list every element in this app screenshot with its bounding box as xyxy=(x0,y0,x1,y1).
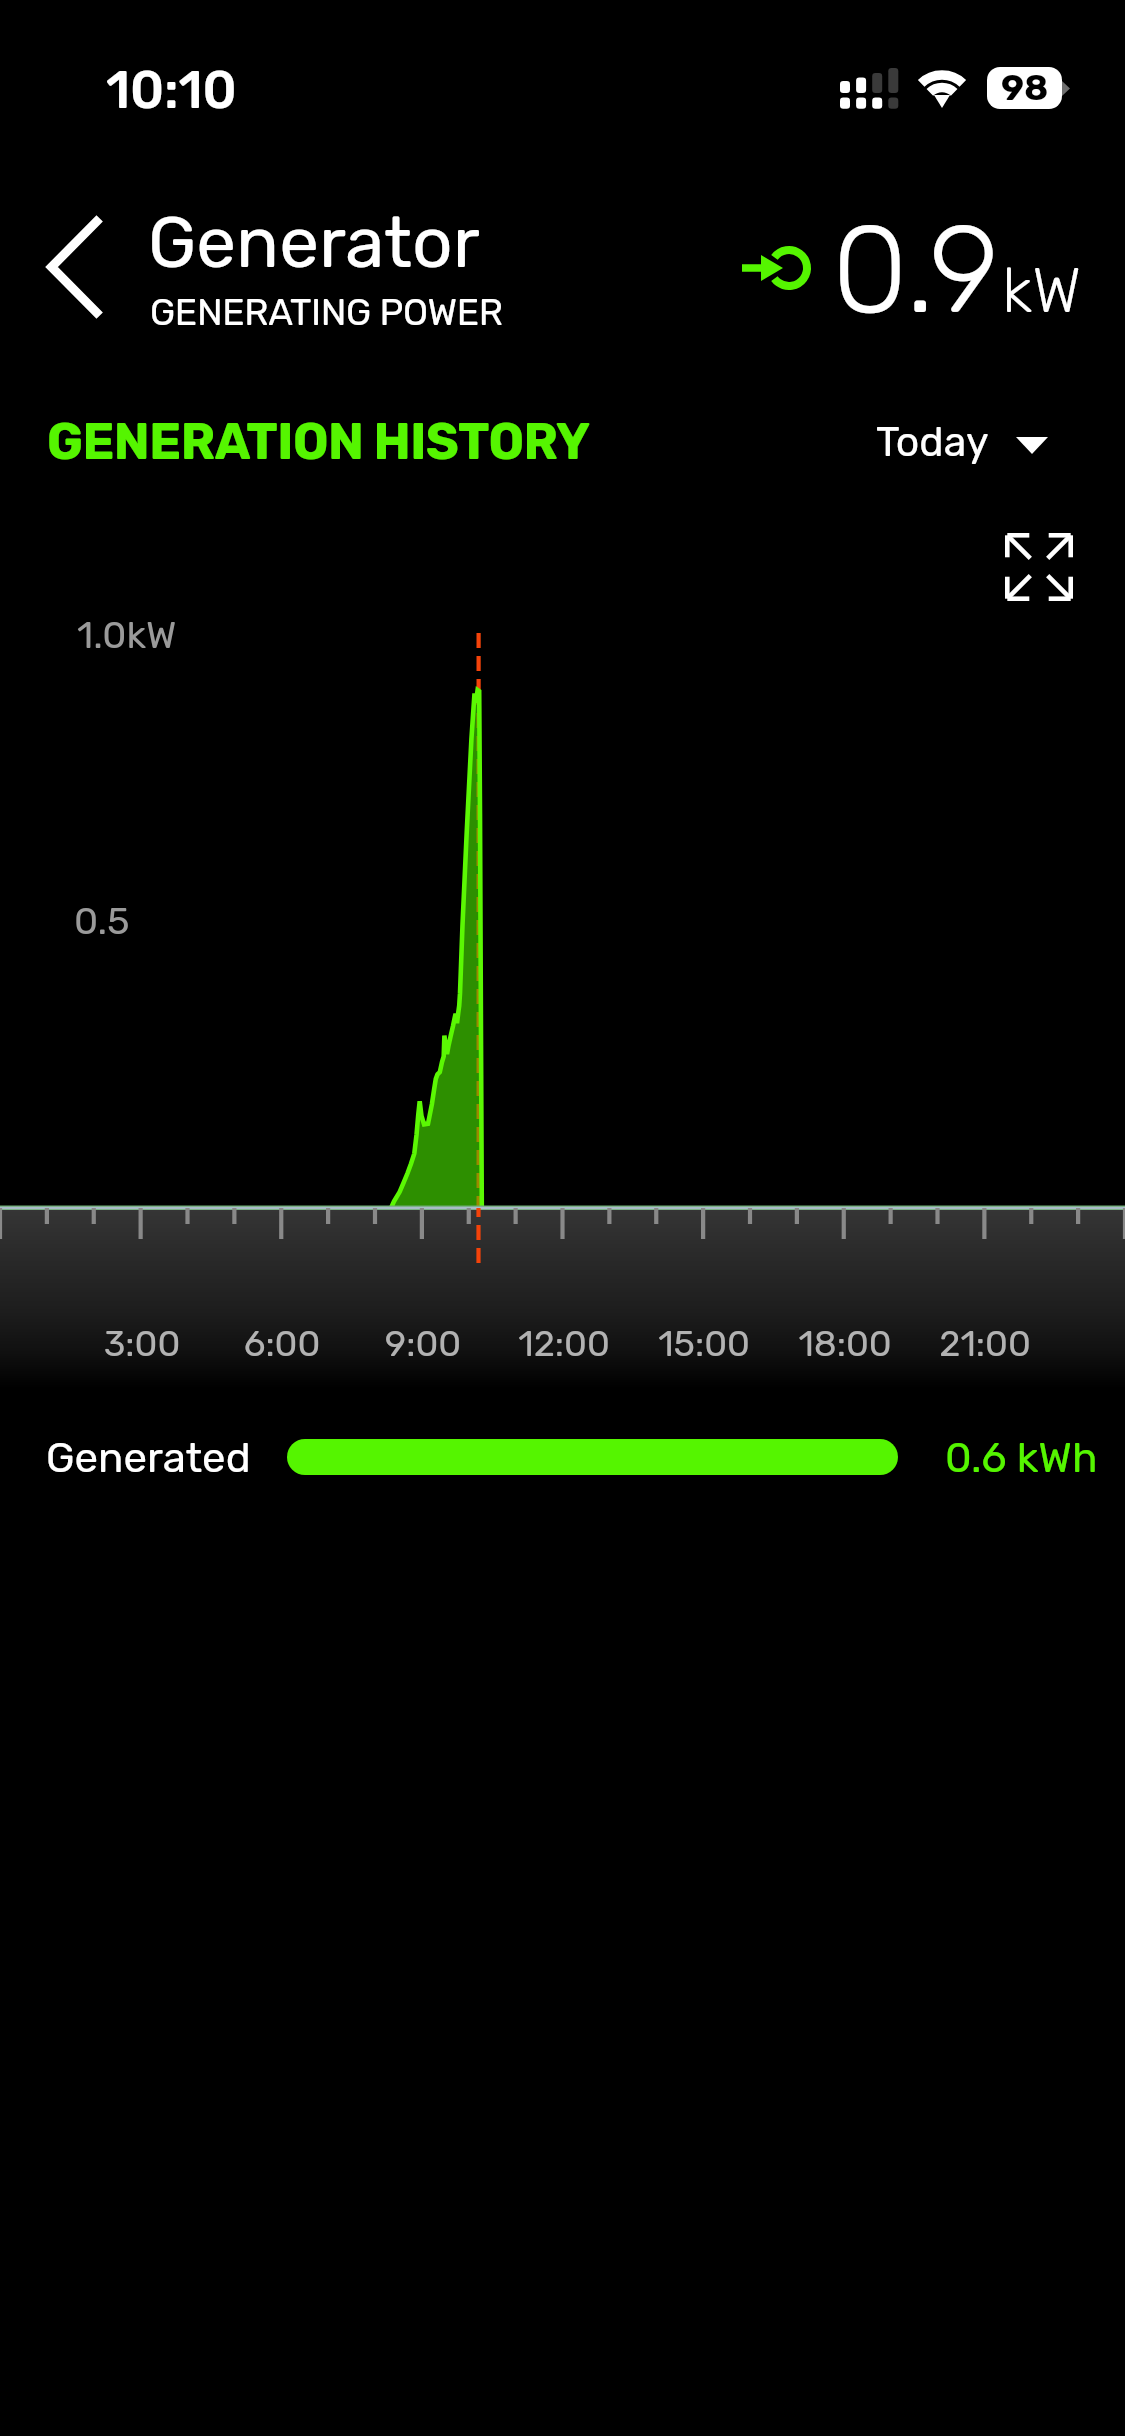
staticText: GENERATION HISTORY xyxy=(47,412,590,471)
staticText: Today xyxy=(876,418,989,467)
staticText: 0.6 kWh xyxy=(945,1433,1098,1483)
staticText: Generator xyxy=(148,201,480,285)
button[interactable]: Today xyxy=(876,406,1048,484)
staticText: Generated xyxy=(46,1433,251,1483)
staticText: 21:00 xyxy=(885,1322,1085,1365)
staticText: 18:00 xyxy=(745,1322,945,1365)
staticText: 6:00 xyxy=(182,1322,382,1365)
staticText: 0.5 xyxy=(74,898,130,943)
staticText: 10:10 xyxy=(106,59,237,121)
staticText: 3:00 xyxy=(42,1322,242,1365)
button[interactable]: Back xyxy=(14,188,134,348)
staticText: GENERATING POWER xyxy=(150,290,503,334)
staticText: 9:00 xyxy=(323,1322,523,1365)
staticText: 15:00 xyxy=(604,1322,804,1365)
staticText: 0.9 xyxy=(832,197,1000,343)
button[interactable]: Generated 0.6 kWh today xyxy=(287,1439,898,1475)
button[interactable]: Expand chart to fullscreen xyxy=(984,512,1094,622)
staticText: kW xyxy=(1002,254,1082,327)
staticText: 98 xyxy=(1001,67,1049,108)
staticText: 1.0kW xyxy=(77,612,177,657)
staticText: 12:00 xyxy=(464,1322,664,1365)
